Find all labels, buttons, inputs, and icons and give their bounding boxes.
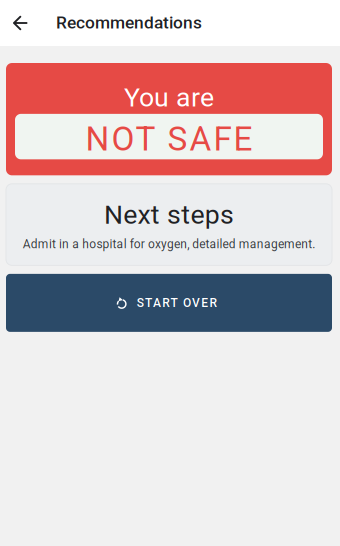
button[interactable]: Back <box>0 0 56 46</box>
staticText: Admit in a hospital for oxygen, detailed… <box>20 237 318 251</box>
staticText: NOT SAFE <box>75 120 262 159</box>
staticText: Recommendations <box>56 12 202 33</box>
button[interactable]: START OVER <box>6 274 332 332</box>
staticText: START OVER <box>137 296 222 310</box>
staticText: You are <box>117 82 221 113</box>
staticText: Next steps <box>97 199 241 230</box>
